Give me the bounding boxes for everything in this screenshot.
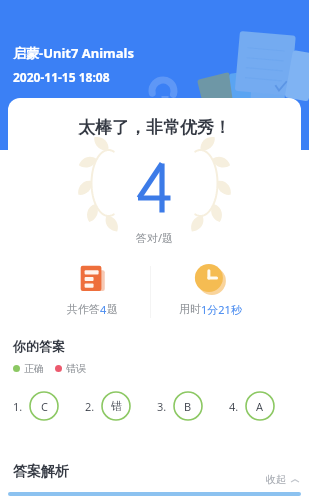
staticText: 答对/题 (8, 230, 301, 245)
staticText: 3. (157, 399, 167, 414)
staticText: 2. (85, 399, 95, 414)
staticText: 4 (100, 302, 107, 317)
button[interactable]: 答案解析 (13, 463, 299, 481)
staticText: 太棒了，非常优秀！ (8, 117, 301, 138)
staticText: 2020-11-15 18:08 (13, 69, 110, 85)
staticText: C (41, 399, 48, 414)
staticText: 1分21秒 (201, 302, 242, 317)
staticText: 启蒙-Unit7 Animals (13, 44, 134, 62)
staticText: 用时 (179, 302, 201, 316)
staticText: A (256, 399, 264, 414)
button[interactable]: 1. (13, 391, 85, 421)
button[interactable]: 共作答 (34, 264, 151, 317)
staticText: 1. (13, 399, 23, 414)
staticText: 4. (229, 399, 239, 414)
staticText: 正确 (24, 362, 44, 375)
staticText: B (184, 399, 192, 414)
button[interactable]: 2. (85, 391, 157, 421)
staticText: 题 (107, 302, 118, 316)
staticText: 答案解析 (13, 463, 69, 481)
staticText: 共作答 (67, 302, 100, 316)
staticText: 收起 (266, 473, 286, 486)
button[interactable]: 4. (229, 391, 301, 421)
staticText: 你的答案 (13, 338, 65, 354)
staticText: 错误 (66, 362, 86, 375)
button[interactable]: 3. (157, 391, 229, 421)
staticText: 错 (111, 399, 122, 413)
button[interactable]: 用时 (151, 264, 269, 317)
